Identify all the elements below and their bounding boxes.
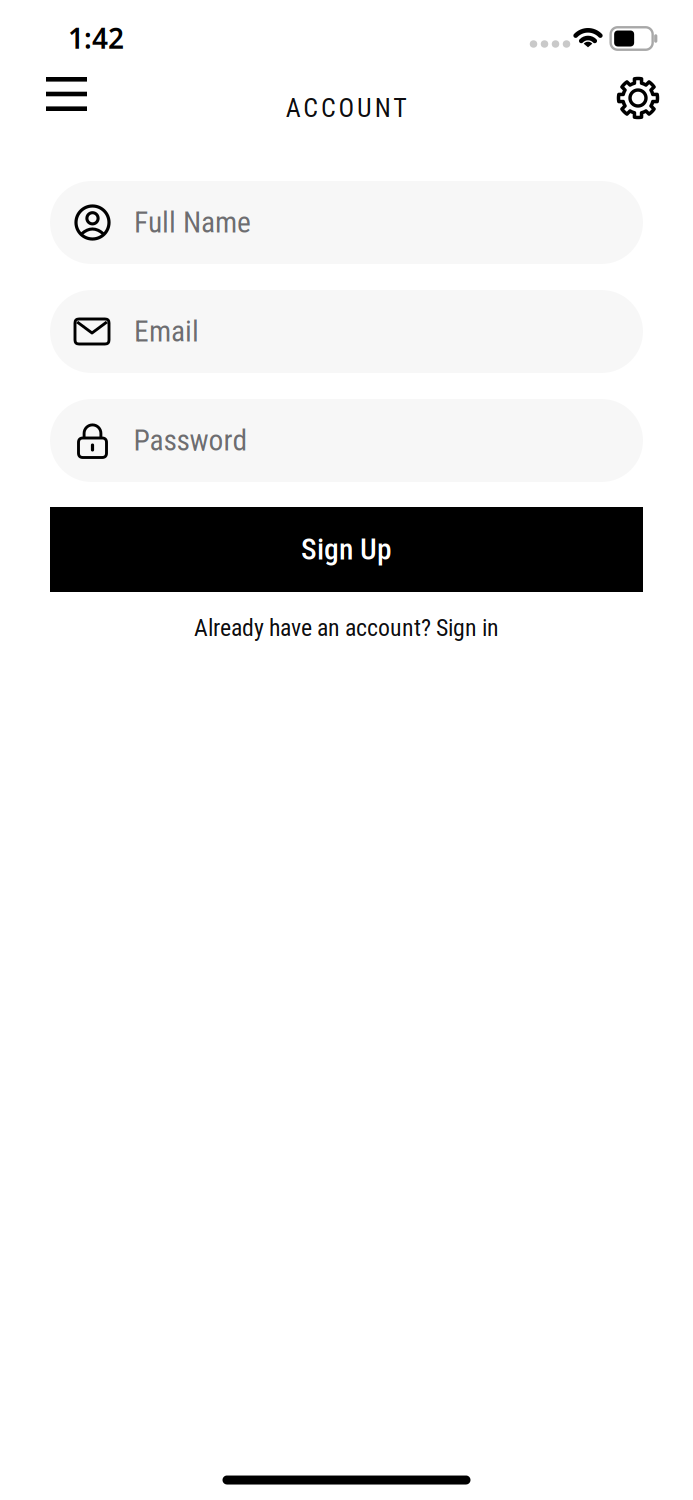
staticText: Already have an account? Sign in: [194, 614, 499, 642]
button[interactable]: Already have an account? Sign in: [194, 614, 499, 642]
button[interactable]: Menu: [46, 77, 87, 111]
button[interactable]: Password: [50, 399, 643, 482]
button[interactable]: Settings: [617, 77, 659, 119]
staticText: Sign Up: [301, 532, 392, 567]
button[interactable]: Email: [50, 290, 643, 373]
staticText: 1:42: [68, 19, 124, 57]
button[interactable]: Sign Up: [50, 507, 643, 592]
staticText: Email: [134, 314, 199, 349]
button[interactable]: Full Name: [50, 181, 643, 264]
staticText: Full Name: [134, 205, 251, 240]
staticText: Password: [133, 423, 247, 458]
staticText: ACCOUNT: [286, 93, 407, 123]
